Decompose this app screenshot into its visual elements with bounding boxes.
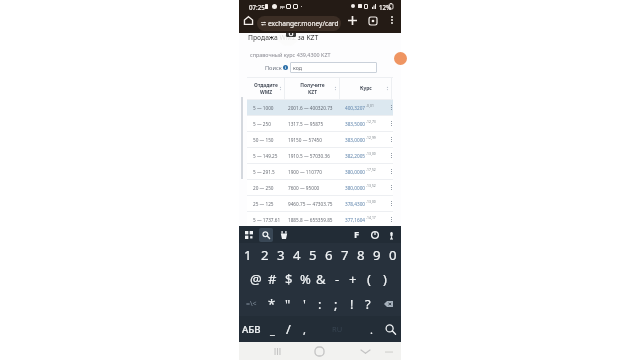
button[interactable]: " xyxy=(280,291,296,316)
button[interactable]: Search xyxy=(379,316,401,342)
button[interactable]: 9 xyxy=(369,243,385,266)
button[interactable]: Home xyxy=(241,13,256,28)
staticText: - xyxy=(335,270,340,288)
staticText: * xyxy=(268,295,276,313)
staticText: 50 — 150 xyxy=(253,137,274,143)
button[interactable]: + xyxy=(345,266,361,291)
button[interactable]: ; xyxy=(328,291,344,316)
button[interactable]: Underscore xyxy=(264,316,280,342)
staticText: 1 xyxy=(244,246,252,264)
button[interactable]: =\< xyxy=(239,291,264,316)
button[interactable]: АБВ xyxy=(239,316,264,342)
button[interactable]: 50 — 150 xyxy=(247,132,393,147)
button[interactable]: New tab xyxy=(345,13,360,28)
staticText: 0 xyxy=(389,246,397,264)
staticText: 383,0000 xyxy=(345,137,366,143)
button[interactable]: 7 xyxy=(337,243,353,266)
staticText: 7 xyxy=(341,246,349,264)
button[interactable]: Text formatting xyxy=(350,228,363,241)
staticText: 1900 — 110770 xyxy=(288,169,322,175)
staticText: / xyxy=(286,320,291,338)
staticText: Продажа WMZ за KZT xyxy=(248,33,319,42)
button[interactable]: % xyxy=(297,266,313,291)
button[interactable]: 25 — 125 xyxy=(247,196,393,211)
staticText: ! xyxy=(350,295,354,313)
staticText: + xyxy=(349,270,357,288)
staticText: 9460.75 — 47303.75 xyxy=(288,201,333,207)
staticText: Курс xyxy=(360,85,372,92)
button[interactable]: 5 — 250 xyxy=(247,116,393,131)
button[interactable]: More options xyxy=(385,13,398,26)
staticText: 5 — 250 xyxy=(253,121,271,127)
staticText: 380,0000 xyxy=(345,169,366,175)
button[interactable]: ) xyxy=(377,266,393,291)
button[interactable]: : xyxy=(312,291,328,316)
button[interactable]: 4 xyxy=(289,243,305,266)
button[interactable]: 5 — 291.5 xyxy=(247,164,393,179)
button[interactable]: Backspace xyxy=(376,291,401,316)
button[interactable]: ' xyxy=(296,291,312,316)
button[interactable]: Back xyxy=(355,342,375,360)
button[interactable]: Hide keyboard xyxy=(380,342,398,360)
button[interactable]: . xyxy=(363,316,379,342)
button[interactable]: & xyxy=(313,266,329,291)
staticText: справочный курс 439,4300 KZT xyxy=(250,51,331,58)
button[interactable]: Home xyxy=(309,342,329,360)
staticText: 5 — 291.5 xyxy=(253,169,275,175)
button[interactable]: @ xyxy=(247,266,264,291)
staticText: 2 xyxy=(261,246,269,264)
button[interactable]: Search xyxy=(259,228,273,242)
staticText: 8 xyxy=(357,246,365,264)
staticText: exchanger.money/card xyxy=(268,19,339,28)
staticText: _ xyxy=(270,322,275,337)
button[interactable]: exchanger.money/card xyxy=(257,16,341,31)
button[interactable]: Recent apps xyxy=(267,342,287,360)
staticText: RU xyxy=(332,324,343,334)
staticText: 3 xyxy=(277,246,285,264)
button[interactable]: 5 xyxy=(305,243,321,266)
button[interactable]: 1 xyxy=(239,243,256,266)
staticText: -13,00 xyxy=(366,199,376,204)
button[interactable]: ? xyxy=(360,291,376,316)
button[interactable]: Voice input xyxy=(385,229,397,241)
button[interactable]: Keyboard layouts xyxy=(242,228,255,241)
staticText: 1317.5 — 95875 xyxy=(288,121,324,127)
button[interactable]: 5 — 1000 xyxy=(247,100,393,115)
staticText: 4 xyxy=(293,246,301,264)
button[interactable]: ! xyxy=(344,291,360,316)
button[interactable]: Settings xyxy=(368,228,381,241)
button[interactable]: 5 — 149.25 xyxy=(247,148,393,163)
button[interactable]: ( xyxy=(361,266,377,291)
button[interactable]: , xyxy=(296,316,312,342)
button[interactable]: 0 xyxy=(385,243,401,266)
staticText: -13,00 xyxy=(366,151,376,156)
button[interactable]: 8 xyxy=(353,243,369,266)
button[interactable]: * xyxy=(264,291,280,316)
staticText: -12,99 xyxy=(366,135,376,140)
button[interactable]: 3 xyxy=(273,243,289,266)
button[interactable]: 2 xyxy=(256,243,273,266)
button[interactable]: # xyxy=(264,266,281,291)
button[interactable]: Поиск xyxy=(265,61,282,74)
staticText: 6 xyxy=(325,246,333,264)
button[interactable]: $ xyxy=(281,266,297,291)
button[interactable]: 20 — 250 xyxy=(247,180,393,195)
staticText: 5 — 1737.61 xyxy=(253,217,281,223)
staticText: 5 — 149.25 xyxy=(253,153,278,159)
button[interactable]: - xyxy=(329,266,345,291)
button[interactable]: Tab switcher xyxy=(365,13,380,28)
staticText: 7600 — 95000 xyxy=(288,185,320,191)
button[interactable]: код xyxy=(290,62,377,73)
staticText: Отдадите WMZ xyxy=(254,82,278,96)
staticText: ? xyxy=(365,295,371,313)
staticText: , xyxy=(303,322,306,337)
button[interactable]: / xyxy=(280,316,296,342)
staticText: 20 — 250 xyxy=(253,185,274,191)
staticText: Получите KZT xyxy=(300,82,325,96)
button[interactable]: 6 xyxy=(321,243,337,266)
button[interactable]: 5 — 1737.61 xyxy=(247,212,393,227)
button[interactable]: Help xyxy=(394,52,407,65)
staticText: код xyxy=(293,64,302,71)
button[interactable]: Stickers xyxy=(277,228,290,241)
